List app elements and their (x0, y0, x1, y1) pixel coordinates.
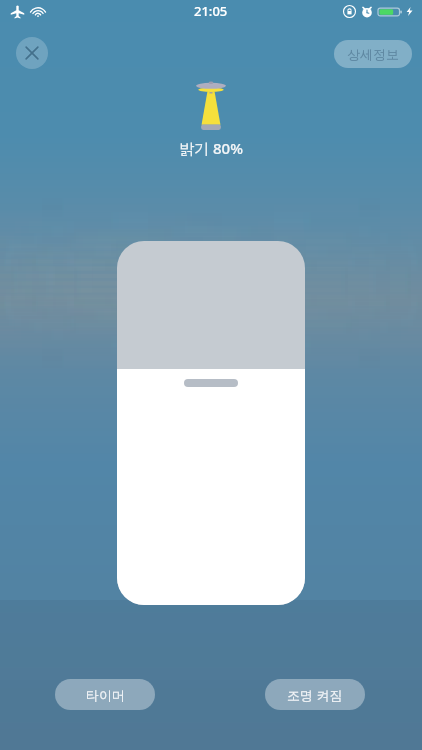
staticText: 밝기 80% (179, 138, 243, 158)
staticText: 조명 켜짐 (287, 686, 343, 704)
staticText: 타이머 (86, 687, 125, 703)
button[interactable]: 조명 켜짐 (265, 679, 365, 710)
staticText: 상세정보 (347, 46, 399, 62)
button[interactable]: 닫기 (16, 37, 48, 69)
button[interactable]: 타이머 (55, 679, 155, 710)
button[interactable]: 밝기 조절 슬라이더 (117, 241, 305, 605)
button[interactable]: 상세정보 (334, 40, 412, 68)
staticText: 21:05 (194, 2, 228, 20)
